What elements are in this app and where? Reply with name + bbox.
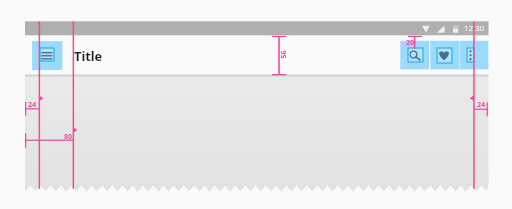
- staticText: 24: [477, 99, 486, 109]
- staticText: 20: [406, 37, 415, 47]
- staticText: 12:30: [464, 23, 485, 34]
- button[interactable]: Search: [408, 48, 423, 62]
- button[interactable]: More options: [467, 48, 474, 62]
- staticText: 24: [28, 99, 37, 109]
- staticText: Title: [74, 47, 103, 64]
- button[interactable]: Open navigation menu: [40, 48, 54, 61]
- staticText: 80: [64, 131, 73, 141]
- button[interactable]: Favorite: [437, 48, 452, 63]
- button[interactable]: Title: [74, 47, 103, 64]
